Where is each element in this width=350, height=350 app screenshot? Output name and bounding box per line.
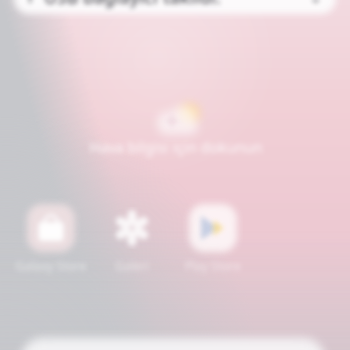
- button[interactable]: Galaxy Store: [0, 0, 350, 350]
- button[interactable]: Galeri: [0, 0, 350, 350]
- button[interactable]: !: [0, 0, 350, 350]
- button[interactable]: Hava bilgisi için dokunun: [0, 0, 350, 350]
- button[interactable]: Play Store: [0, 0, 350, 350]
